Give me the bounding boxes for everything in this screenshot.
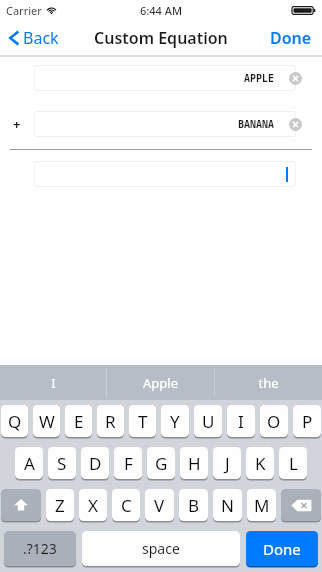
button[interactable]: C [112,489,140,521]
button[interactable]: A [15,447,43,479]
button[interactable]: K [246,447,274,479]
staticText: O [267,410,281,433]
button[interactable]: U [194,405,222,437]
button[interactable]: J [213,447,241,479]
button[interactable]: F [114,447,142,479]
staticText: BANANA [238,117,274,131]
staticText: I [51,374,56,392]
button[interactable]: Done [268,23,314,53]
staticText: the [258,374,279,392]
button[interactable]: Apple [107,365,214,400]
staticText: + [13,115,21,133]
button[interactable]: S [48,447,76,479]
staticText: J [225,452,230,475]
button[interactable]: O [260,405,288,437]
staticText: I [238,410,244,433]
button[interactable]: Z [46,489,74,521]
button[interactable] [34,161,296,187]
staticText: S [57,452,67,475]
staticText: H [188,452,201,475]
button[interactable]: Done [246,531,318,566]
staticText: APPLE [244,71,274,85]
staticText: .?123 [23,539,57,558]
button[interactable]: W [33,405,60,437]
staticText: A [24,452,35,475]
staticText: space [142,539,180,558]
staticText: F [124,452,133,475]
staticText: U [202,410,215,433]
button[interactable]: APPLE [34,65,296,91]
button[interactable]: Clear text [286,69,304,87]
button[interactable]: D [81,447,109,479]
staticText: D [89,452,102,475]
staticText: V [154,494,165,517]
button[interactable]: L [279,447,307,479]
staticText: C [121,494,132,517]
staticText: Done [270,27,312,49]
staticText: E [74,410,84,433]
button[interactable]: Backspace [281,489,321,521]
staticText: X [88,494,98,517]
button[interactable]: Shift [1,489,41,521]
button[interactable]: I [0,365,106,400]
button[interactable]: P [293,405,321,437]
staticText: Custom Equation [94,27,228,49]
button[interactable]: Back [7,23,61,53]
staticText: Done [263,539,301,559]
button[interactable]: the [215,365,322,400]
staticText: K [255,452,266,475]
button[interactable]: Clear text [286,115,304,133]
staticText: Apple [143,374,178,392]
staticText: Back [23,27,59,49]
button[interactable]: space [82,531,240,566]
staticText: N [221,494,234,517]
button[interactable]: B [179,489,208,521]
staticText: G [155,452,168,475]
staticText: Carrier [6,3,42,18]
staticText: Z [55,494,65,517]
button[interactable]: R [97,405,124,437]
staticText: Q [8,410,22,433]
button[interactable]: I [227,405,255,437]
staticText: W [39,410,55,433]
button[interactable]: G [147,447,175,479]
staticText: Y [170,410,180,433]
staticText: T [138,410,148,433]
staticText: P [302,410,313,433]
button[interactable]: V [145,489,174,521]
staticText: L [289,452,298,475]
staticText: M [254,494,270,517]
button[interactable]: .?123 [4,531,76,566]
button[interactable]: Q [1,405,28,437]
staticText: 6:44 AM [140,3,183,18]
staticText: B [188,494,200,517]
button[interactable]: E [65,405,92,437]
button[interactable]: T [129,405,156,437]
button[interactable]: X [79,489,107,521]
button[interactable]: H [180,447,208,479]
button[interactable]: Y [161,405,189,437]
staticText: R [105,410,116,433]
button[interactable]: N [213,489,242,521]
button[interactable]: BANANA [34,111,296,137]
button[interactable]: M [247,489,276,521]
